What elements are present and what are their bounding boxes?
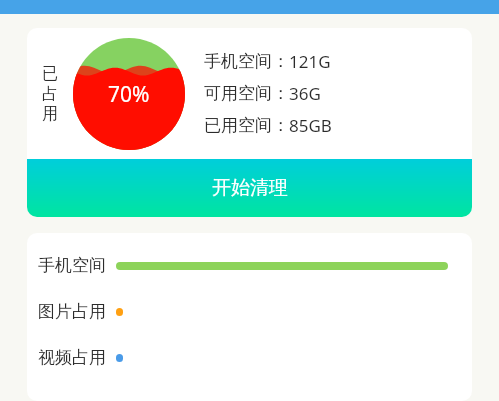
staticText: 已用空间： (204, 115, 289, 136)
button[interactable]: 开始清理 (27, 159, 472, 217)
staticText: 70% (108, 80, 150, 109)
staticText: 图片占用 (38, 301, 106, 322)
staticText: 可用空间： (204, 83, 289, 104)
button[interactable]: 视频占用 (27, 347, 472, 368)
staticText: 已 (42, 64, 58, 84)
staticText: 开始清理 (212, 176, 288, 200)
staticText: 用 (42, 104, 58, 124)
staticText: 占 (42, 84, 58, 104)
staticText: 36G (289, 82, 321, 105)
staticText: 手机空间： (204, 51, 289, 72)
staticText: 视频占用 (38, 347, 106, 368)
staticText: 121G (289, 50, 331, 73)
staticText: 手机空间 (38, 255, 106, 276)
button[interactable]: 图片占用 (27, 301, 472, 322)
button[interactable]: 手机空间 (27, 255, 472, 276)
staticText: 85GB (289, 114, 332, 137)
